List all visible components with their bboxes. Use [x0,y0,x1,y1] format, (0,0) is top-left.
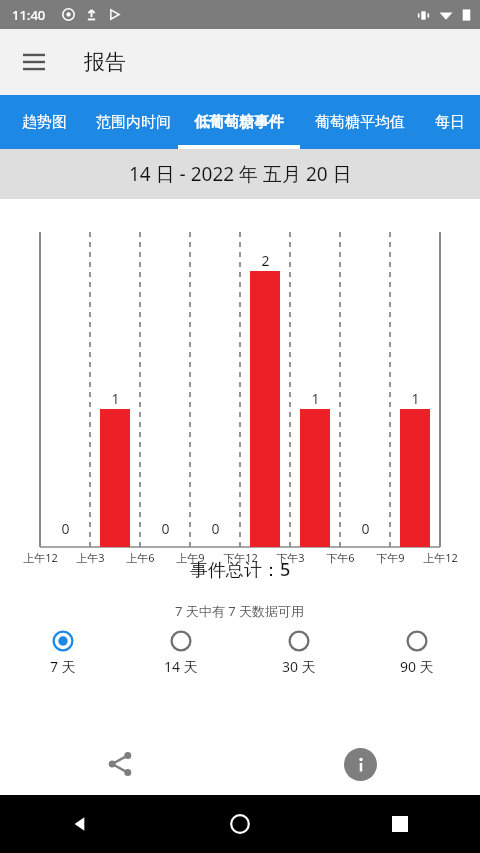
staticText: 下午12 [223,550,258,565]
staticText: 下午3 [276,550,305,565]
button[interactable]: 90 天 [362,628,472,678]
staticText: 0 [61,519,70,538]
staticText: 上午12 [23,550,58,565]
button[interactable]: Information [240,733,480,795]
staticText: 0 [361,519,370,538]
staticText: 30 天 [282,657,316,676]
button[interactable]: Back [0,795,160,853]
staticText: 1 [411,389,420,408]
staticText: 90 天 [400,657,434,676]
button[interactable]: 14 天 [126,628,236,678]
staticText: 报告 [84,49,126,75]
staticText: 1 [311,389,320,408]
staticText: 事件总计：5 [190,557,291,582]
staticText: 7 天 [50,657,76,676]
staticText: 1 [111,389,120,408]
staticText: 0 [211,519,220,538]
staticText: 范围内时间 [96,113,171,132]
staticText: 11:40 [12,6,46,24]
staticText: 下午9 [376,550,405,565]
button[interactable]: 葡萄糖平均值 [300,95,420,149]
staticText: 上午3 [76,550,105,565]
button[interactable]: Share [0,733,240,795]
button[interactable]: 趋势图 [0,95,88,149]
button[interactable]: Home [160,795,320,853]
staticText: 上午12 [423,550,458,565]
staticText: 上午9 [176,550,205,565]
staticText: 14 日 - 2022 年 五月 20 日 [129,161,352,187]
button[interactable]: 低葡萄糖事件 [178,95,300,149]
staticText: 趋势图 [22,113,67,132]
staticText: 葡萄糖平均值 [315,113,405,132]
button[interactable]: 7 天 [8,628,118,678]
button[interactable]: 范围内时间 [88,95,178,149]
staticText: 0 [161,519,170,538]
staticText: 上午6 [126,550,155,565]
staticText: 下午6 [326,550,355,565]
button[interactable]: Recents [320,795,480,853]
staticText: 14 天 [164,657,198,676]
button[interactable]: 每日 [420,95,480,149]
button[interactable]: 30 天 [244,628,354,678]
staticText: 低葡萄糖事件 [194,113,284,132]
staticText: 2 [261,251,270,270]
button[interactable]: Menu [13,41,55,83]
staticText: 7 天中有 7 天数据可用 [175,602,305,620]
staticText: 每日 [435,113,465,132]
